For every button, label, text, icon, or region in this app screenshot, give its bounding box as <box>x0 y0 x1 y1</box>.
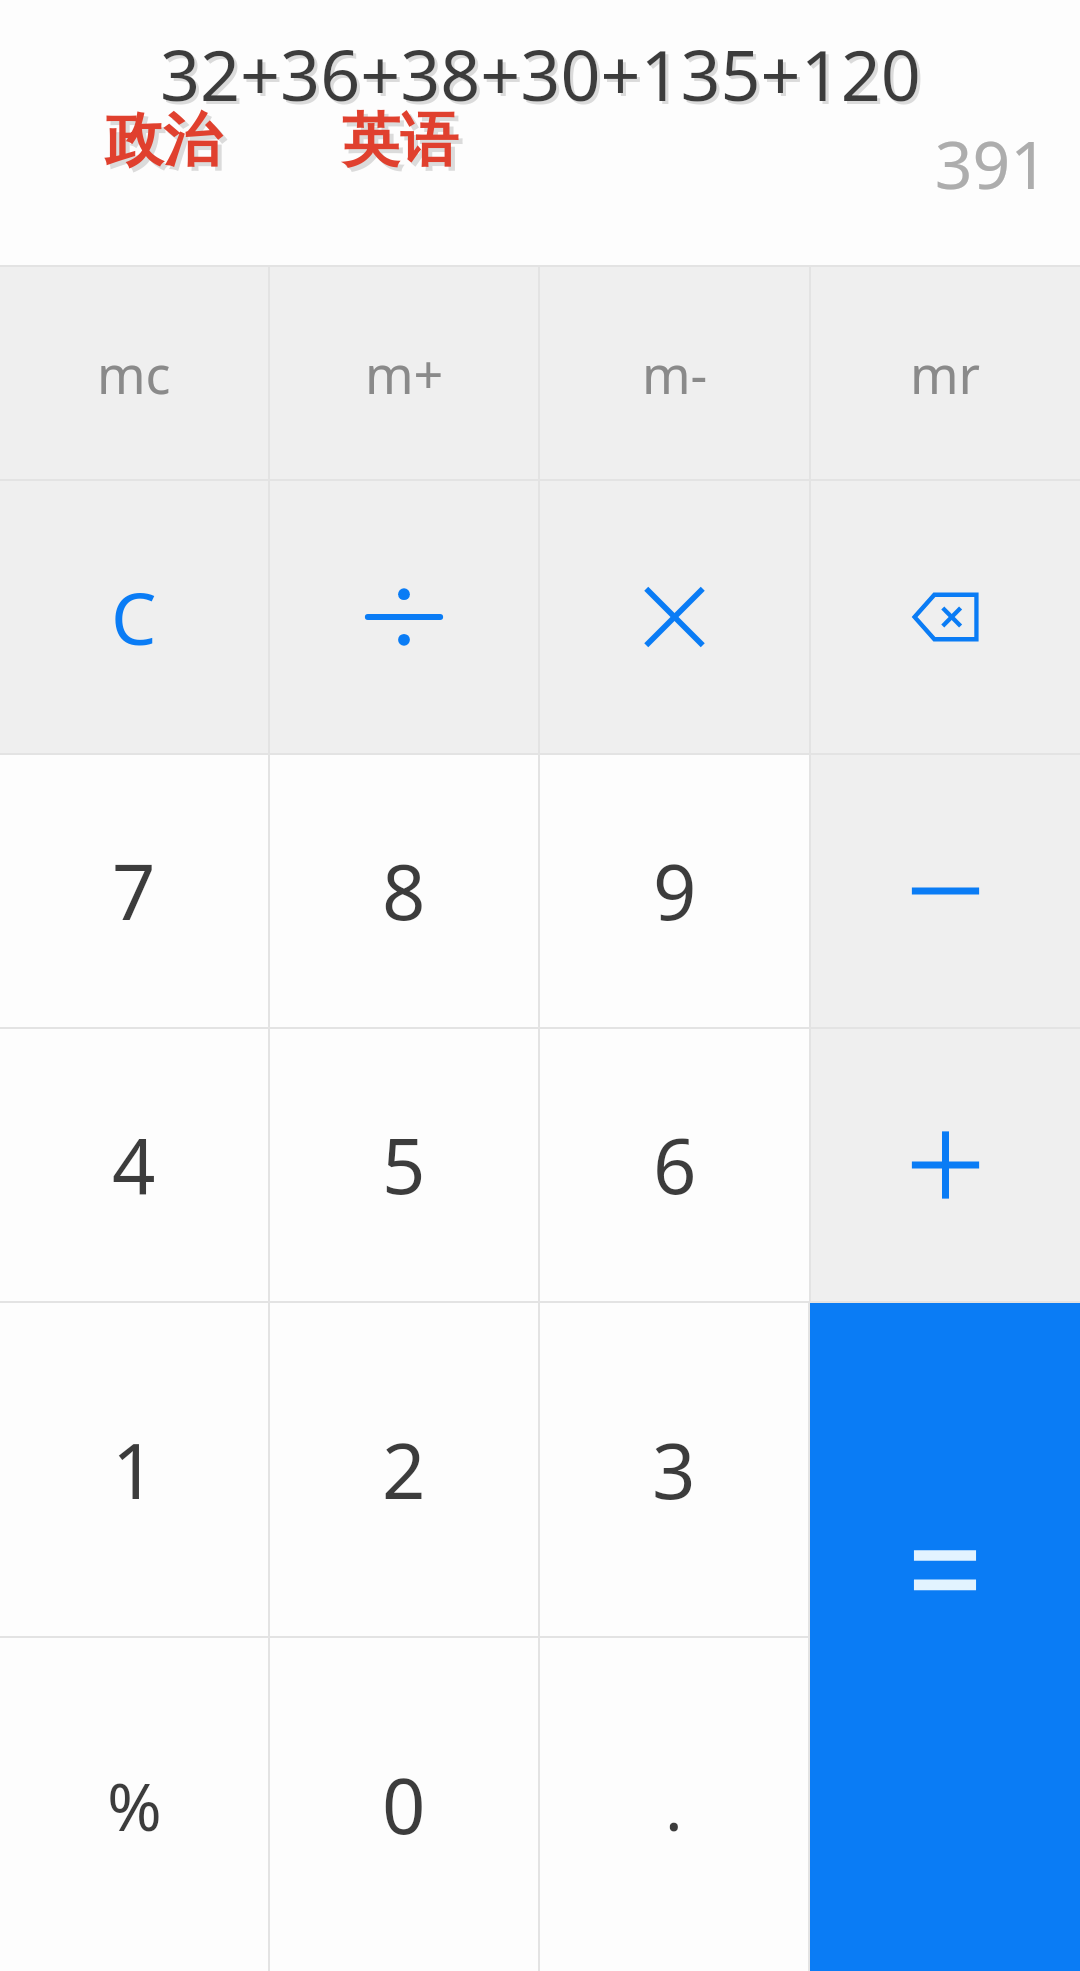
staticText: % <box>107 1760 162 1850</box>
button[interactable]: mc <box>0 267 268 479</box>
button[interactable]: 8 <box>270 755 538 1027</box>
staticText: m+ <box>365 338 444 409</box>
staticText: 政治 <box>109 108 225 181</box>
staticText: 6 <box>653 1113 697 1217</box>
staticText: 0 <box>382 1753 426 1857</box>
button[interactable]: 1 <box>0 1303 268 1636</box>
staticText: 英语 <box>346 108 462 181</box>
button[interactable]: . <box>540 1638 808 1971</box>
button[interactable]: 0 <box>270 1638 538 1971</box>
button[interactable]: 2 <box>270 1303 538 1636</box>
button[interactable]: 7 <box>0 755 268 1027</box>
button[interactable]: 5 <box>270 1029 538 1301</box>
button[interactable]: Divide <box>270 481 538 753</box>
staticText: C <box>111 568 157 666</box>
staticText: 8 <box>382 839 426 943</box>
button[interactable]: Plus <box>811 1029 1080 1301</box>
button[interactable]: m+ <box>270 267 538 479</box>
staticText: 32+36+38+30+135+120 <box>160 26 921 121</box>
button[interactable]: % <box>0 1638 268 1971</box>
staticText: 1 <box>112 1418 156 1522</box>
button[interactable]: 4 <box>0 1029 268 1301</box>
staticText: 4 <box>112 1113 156 1217</box>
staticText: 2 <box>382 1418 426 1522</box>
button[interactable]: C <box>0 481 268 753</box>
button[interactable]: 3 <box>540 1303 808 1636</box>
staticText: 32+36+38+30+135+120 <box>163 29 924 124</box>
staticText: 5 <box>382 1113 426 1217</box>
staticText: mc <box>97 338 171 409</box>
staticText: 7 <box>112 839 156 943</box>
button[interactable]: 9 <box>540 755 809 1027</box>
staticText: 3 <box>652 1418 696 1522</box>
button[interactable]: 6 <box>540 1029 809 1301</box>
button[interactable]: mr <box>811 267 1080 479</box>
button[interactable]: Minus <box>811 755 1080 1027</box>
staticText: 政治 <box>105 104 221 177</box>
staticText: m- <box>642 338 708 409</box>
staticText: 英语 <box>342 104 458 177</box>
button[interactable]: Equals <box>810 1303 1080 1971</box>
button[interactable]: m- <box>540 267 809 479</box>
staticText: 391 <box>934 118 1048 208</box>
button[interactable]: Backspace <box>811 481 1080 753</box>
staticText: . <box>665 1760 683 1850</box>
staticText: 9 <box>653 839 697 943</box>
staticText: mr <box>910 338 981 409</box>
button[interactable]: Multiply <box>540 481 809 753</box>
